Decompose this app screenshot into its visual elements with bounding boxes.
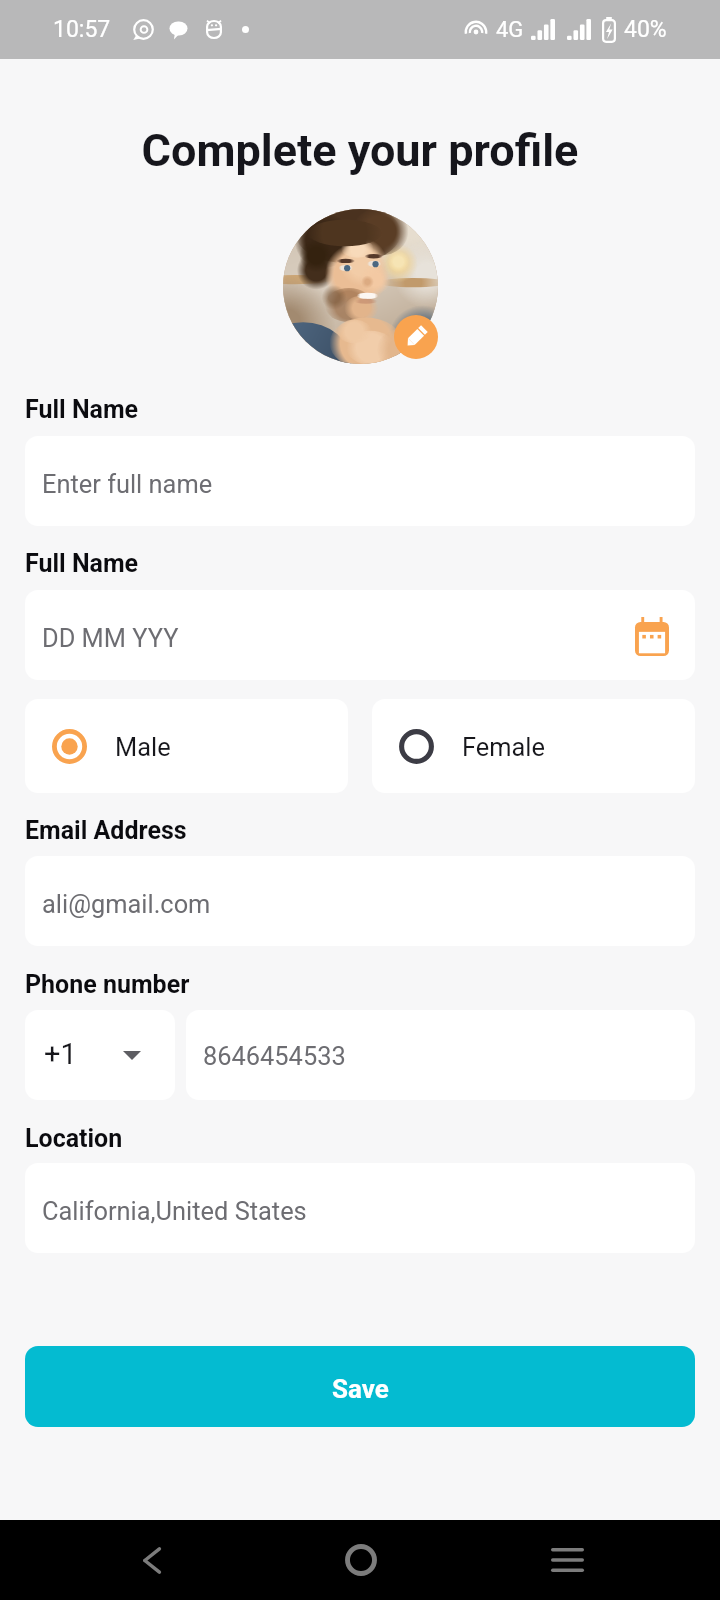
staticText: California,United States (42, 1196, 307, 1226)
staticText: 10:57 (53, 16, 111, 43)
button[interactable]: Save (25, 1346, 695, 1427)
button[interactable]: Back (92, 1520, 212, 1600)
button[interactable]: Female (372, 699, 695, 793)
staticText: Male (115, 732, 171, 762)
staticText: ali@gmail.com (42, 889, 211, 919)
button[interactable]: ali@gmail.com (25, 856, 695, 946)
button[interactable]: California,United States (25, 1163, 695, 1253)
staticText: Enter full name (42, 469, 213, 499)
button[interactable]: Home (301, 1520, 421, 1600)
staticText: DD MM YYY (42, 623, 179, 653)
staticText: +1 (44, 1037, 77, 1071)
staticText: 40% (624, 16, 667, 43)
button[interactable]: Recent apps (507, 1520, 627, 1600)
staticText: Complete your profile (0, 124, 720, 177)
staticText: Email Address (25, 816, 187, 845)
staticText: Phone number (25, 970, 190, 999)
button[interactable]: +1 (25, 1010, 175, 1100)
button[interactable]: 8646454533 (186, 1010, 695, 1100)
button[interactable]: Male (25, 699, 348, 793)
button[interactable]: Edit profile photo (394, 315, 438, 359)
staticText: Female (462, 732, 545, 762)
staticText: Save (332, 1374, 389, 1404)
button[interactable]: DD MM YYY (25, 590, 695, 680)
staticText: Full Name (25, 395, 139, 424)
staticText: 4G (496, 17, 524, 43)
button[interactable] (283, 209, 438, 364)
staticText: Location (25, 1124, 123, 1153)
staticText: 8646454533 (203, 1041, 346, 1071)
button[interactable]: Enter full name (25, 436, 695, 526)
staticText: Full Name (25, 549, 139, 578)
